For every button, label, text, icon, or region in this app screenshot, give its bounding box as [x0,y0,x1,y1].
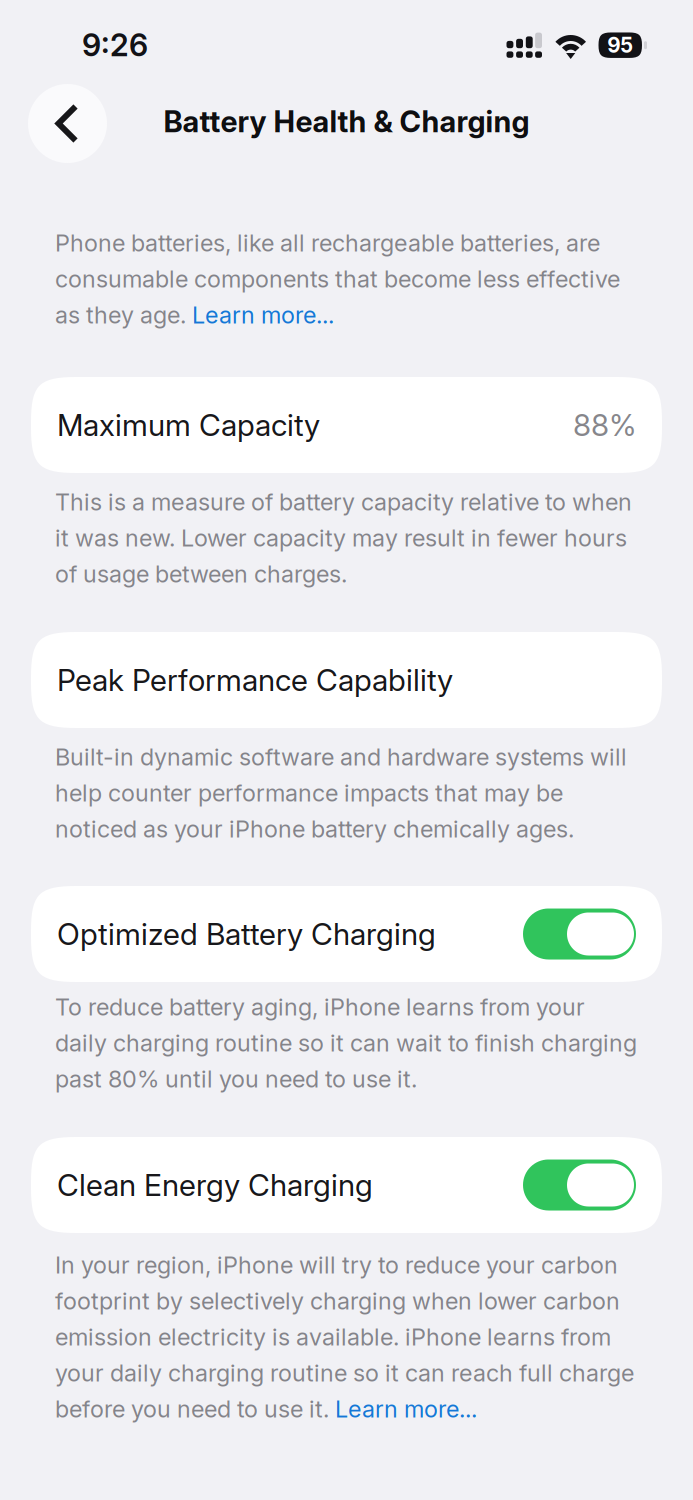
staticText: emission electricity is available. iPhon… [55,1323,611,1351]
staticText: Built-in dynamic software and hardware s… [55,743,627,771]
button[interactable]: Clean Energy Charging [31,1137,662,1233]
staticText: as they age. [55,301,192,329]
staticText: past 80% until you need to use it. [55,1065,417,1093]
staticText: Optimized Battery Charging [57,916,436,952]
button[interactable]: Peak Performance Capability [31,632,662,728]
staticText: 9:26 [82,27,148,64]
staticText: help counter performance impacts that ma… [55,779,563,807]
staticText: it was new. Lower capacity may result in… [55,524,627,552]
staticText: 88% [573,407,636,443]
staticText: To reduce battery aging, iPhone learns f… [55,993,585,1021]
staticText: noticed as your iPhone battery chemicall… [55,815,574,843]
staticText: Learn more... [335,1395,477,1423]
staticText: Clean Energy Charging [57,1167,373,1203]
staticText: Maximum Capacity [57,407,320,443]
staticText: footprint by selectively charging when l… [55,1287,620,1315]
button[interactable]: Maximum Capacity [31,377,662,473]
staticText: Phone batteries, like all rechargeable b… [55,229,600,257]
staticText: In your region, iPhone will try to reduc… [55,1251,618,1279]
staticText: Peak Performance Capability [57,662,453,698]
staticText: of usage between charges. [55,560,347,588]
button[interactable]: Back [28,77,107,156]
staticText: This is a measure of battery capacity re… [55,488,632,516]
staticText: Battery Health & Charging [163,104,529,139]
staticText: before you need to use it. [55,1395,335,1423]
staticText: Learn more... [192,301,334,329]
staticText: 95 [607,33,633,58]
button[interactable]: Optimized Battery Charging [31,886,662,982]
staticText: your daily charging routine so it can re… [55,1359,634,1387]
staticText: daily charging routine so it can wait to… [55,1029,637,1057]
staticText: consumable components that become less e… [55,265,620,293]
